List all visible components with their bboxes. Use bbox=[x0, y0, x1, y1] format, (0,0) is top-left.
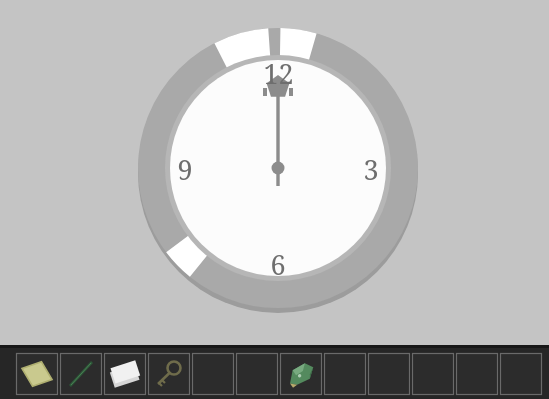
button[interactable]: Empty inventory slot 8 bbox=[323, 352, 367, 396]
button[interactable]: Empty inventory slot 11 bbox=[455, 352, 499, 396]
staticText: 6 bbox=[270, 246, 286, 282]
button[interactable]: Empty inventory slot 10 bbox=[411, 352, 455, 396]
staticText: 3 bbox=[363, 151, 379, 187]
staticText: 9 bbox=[177, 151, 193, 187]
button[interactable]: Empty inventory slot 9 bbox=[367, 352, 411, 396]
staticText: 12 bbox=[263, 55, 294, 91]
button[interactable]: Green gem item bbox=[279, 352, 323, 396]
button[interactable]: Empty inventory slot 6 bbox=[235, 352, 279, 396]
button[interactable]: Empty inventory slot 12 bbox=[499, 352, 543, 396]
button[interactable]: Paper item bbox=[103, 352, 147, 396]
button[interactable]: Empty inventory slot 5 bbox=[191, 352, 235, 396]
button[interactable]: Golden plate item bbox=[15, 352, 59, 396]
button[interactable]: Key item bbox=[147, 352, 191, 396]
button[interactable]: Green rod item bbox=[59, 352, 103, 396]
